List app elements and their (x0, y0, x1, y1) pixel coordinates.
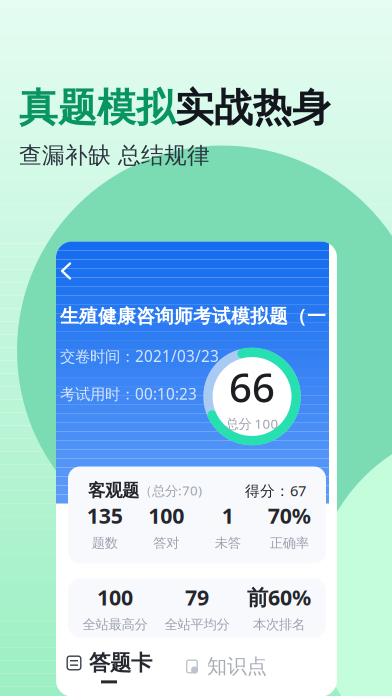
staticText: 未答 (215, 535, 241, 551)
staticText: 得分：67 (245, 480, 306, 500)
staticText: 100 (148, 501, 184, 530)
staticText: 生殖健康咨询师考试模拟题（一） (60, 304, 345, 328)
staticText: 70% (268, 501, 311, 530)
staticText: 考试用时：00:10:23 (60, 383, 197, 404)
staticText: 客观题 (88, 479, 139, 501)
staticText: 66 (229, 360, 275, 413)
button[interactable]: Back (52, 255, 80, 286)
button[interactable]: 答题卡 (66, 649, 152, 683)
staticText: 答题卡 (89, 649, 152, 676)
staticText: 135 (87, 501, 123, 530)
staticText: （总分:70) (139, 481, 202, 500)
button[interactable]: 知识点 (184, 654, 267, 679)
staticText: 实战热身 (175, 83, 331, 132)
staticText: 题数 (92, 535, 118, 551)
staticText: 总分 100 (225, 414, 278, 433)
staticText: 本次排名 (253, 616, 305, 633)
staticText: 1 (222, 501, 234, 530)
staticText: 知识点 (207, 654, 267, 679)
staticText: 查漏补缺 总结规律 (19, 141, 210, 170)
staticText: 79 (185, 583, 209, 611)
staticText: 前60% (247, 583, 311, 611)
staticText: 真题模拟 (19, 83, 175, 132)
staticText: 正确率 (270, 535, 309, 551)
staticText: 交卷时间：2021/03/23 (60, 345, 219, 366)
staticText: 全站最高分 (82, 616, 147, 633)
staticText: 全站平均分 (164, 616, 229, 633)
staticText: 答对 (153, 535, 179, 551)
staticText: 100 (97, 583, 133, 611)
